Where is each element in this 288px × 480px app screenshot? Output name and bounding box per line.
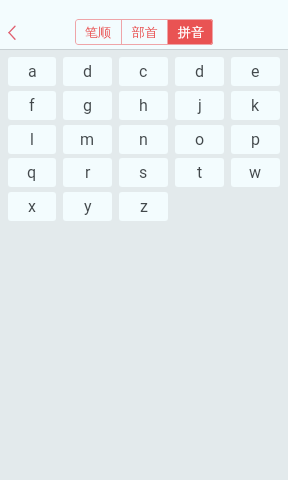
button[interactable]: j [175, 91, 224, 120]
button[interactable]: n [119, 125, 168, 154]
staticText: m [80, 130, 95, 149]
staticText: t [197, 163, 203, 182]
staticText: k [251, 96, 260, 115]
staticText: 笔顺 [85, 24, 111, 40]
button[interactable]: z [119, 192, 168, 221]
staticText: p [251, 130, 260, 149]
button[interactable]: w [231, 158, 280, 187]
button[interactable]: 拼音 [168, 19, 213, 45]
button[interactable]: 笔顺 [75, 19, 121, 45]
staticText: r [85, 163, 91, 182]
button[interactable]: y [63, 192, 112, 221]
staticText: z [140, 197, 148, 216]
button[interactable]: o [175, 125, 224, 154]
button[interactable]: f [8, 91, 56, 120]
staticText: y [84, 197, 92, 216]
button[interactable]: 部首 [122, 19, 167, 45]
staticText: d [83, 62, 93, 81]
staticText: s [139, 163, 148, 182]
staticText: c [139, 62, 148, 81]
staticText: j [198, 96, 202, 115]
button[interactable]: q [8, 158, 56, 187]
button[interactable]: k [231, 91, 280, 120]
button[interactable]: a [8, 57, 56, 86]
button[interactable]: e [231, 57, 280, 86]
staticText: h [139, 96, 148, 115]
button[interactable]: m [63, 125, 112, 154]
button[interactable]: r [63, 158, 112, 187]
button[interactable]: t [175, 158, 224, 187]
button[interactable]: d [175, 57, 224, 86]
button[interactable]: s [119, 158, 168, 187]
button[interactable]: d [63, 57, 112, 86]
staticText: f [29, 96, 35, 115]
button[interactable]: Back [0, 0, 33, 49]
staticText: o [195, 130, 205, 149]
staticText: g [83, 96, 92, 115]
button[interactable]: c [119, 57, 168, 86]
button[interactable]: h [119, 91, 168, 120]
staticText: 部首 [132, 24, 158, 40]
button[interactable]: g [63, 91, 112, 120]
staticText: l [30, 130, 34, 149]
staticText: x [28, 197, 36, 216]
button[interactable]: l [8, 125, 56, 154]
staticText: d [195, 62, 205, 81]
staticText: n [139, 130, 148, 149]
staticText: a [28, 62, 37, 81]
staticText: e [251, 62, 260, 81]
staticText: q [27, 163, 37, 182]
staticText: 拼音 [178, 24, 204, 40]
button[interactable]: p [231, 125, 280, 154]
button[interactable]: x [8, 192, 56, 221]
staticText: w [249, 163, 262, 182]
